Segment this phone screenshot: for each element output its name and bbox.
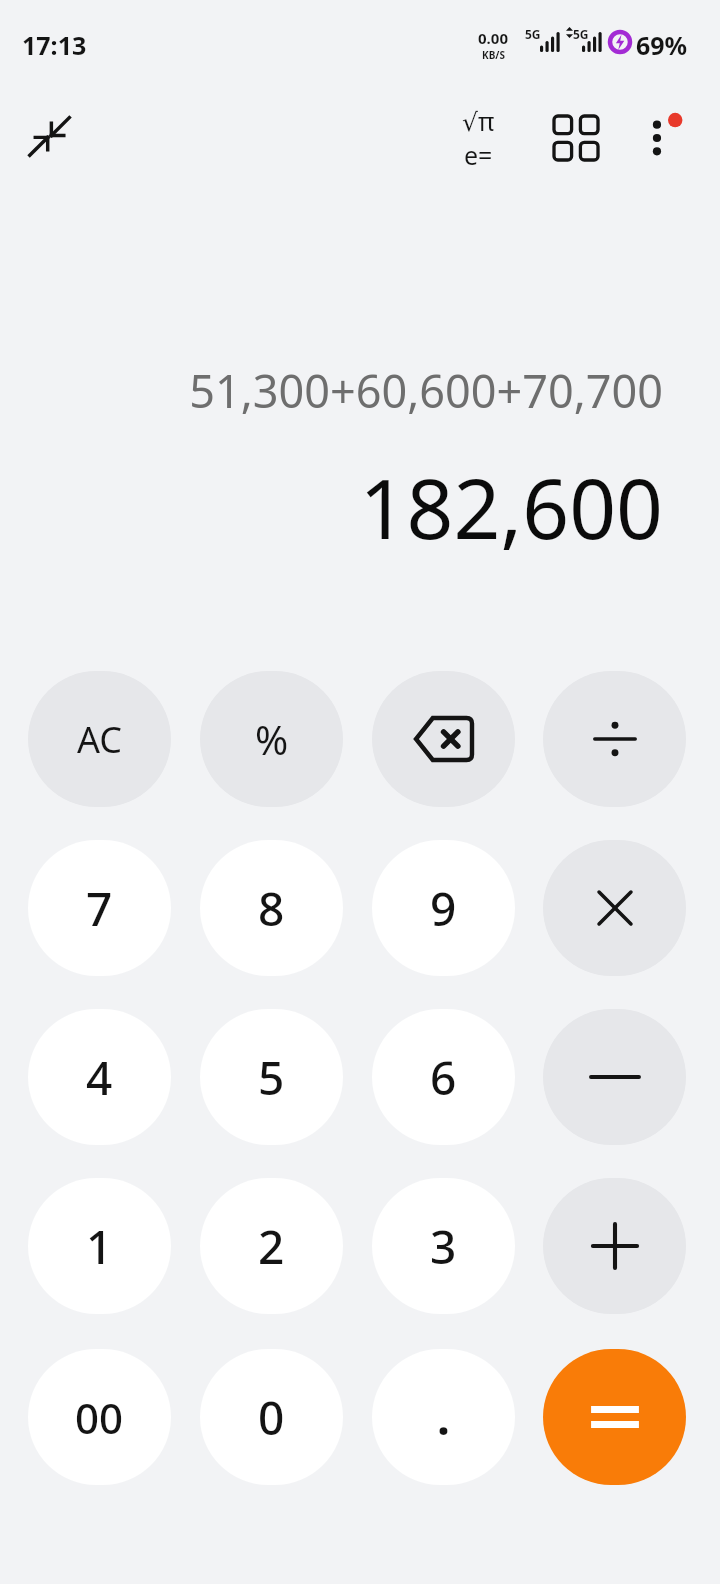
staticText: 17:13 xyxy=(22,28,87,62)
staticText: √π xyxy=(462,104,495,138)
staticText: 69% xyxy=(636,28,688,62)
button[interactable]: 4 xyxy=(28,1009,171,1145)
staticText: 6 xyxy=(430,1046,457,1109)
staticText: 51,300+60,600+70,700 xyxy=(189,360,663,421)
staticText: % xyxy=(255,712,289,766)
staticText: KB/S xyxy=(482,48,505,62)
button[interactable]: 8 xyxy=(200,840,343,976)
button[interactable]: 1 xyxy=(28,1178,171,1314)
staticText: 5 xyxy=(258,1046,285,1109)
button[interactable]: More options xyxy=(622,100,698,176)
staticText: 8 xyxy=(258,877,285,940)
button[interactable]: Minus xyxy=(543,1009,686,1145)
button[interactable]: Equals xyxy=(543,1349,686,1485)
button[interactable]: Plus xyxy=(543,1178,686,1314)
staticText: e= xyxy=(464,138,493,172)
button[interactable]: AC xyxy=(28,671,171,807)
staticText: 0 xyxy=(258,1386,285,1449)
button[interactable]: Backspace xyxy=(372,671,515,807)
staticText: 9 xyxy=(430,877,457,940)
staticText: 0.00 xyxy=(478,28,508,48)
staticText: 7 xyxy=(86,877,113,940)
button[interactable]: 3 xyxy=(372,1178,515,1314)
button[interactable]: . xyxy=(372,1349,515,1485)
staticText: 5G xyxy=(573,26,589,42)
staticText: 5G xyxy=(525,26,541,42)
staticText: . xyxy=(437,1386,450,1449)
button[interactable]: % xyxy=(200,671,343,807)
staticText: 2 xyxy=(258,1215,285,1278)
button[interactable]: 2 xyxy=(200,1178,343,1314)
button[interactable]: Multiply xyxy=(543,840,686,976)
button[interactable]: Keypad layout xyxy=(538,100,614,176)
button[interactable]: 9 xyxy=(372,840,515,976)
button[interactable]: 00 xyxy=(28,1349,171,1485)
button[interactable]: Scientific xyxy=(440,100,516,176)
button[interactable]: Divide xyxy=(543,671,686,807)
staticText: 00 xyxy=(75,1389,124,1446)
staticText: AC xyxy=(77,715,123,764)
button[interactable]: Collapse xyxy=(14,100,86,172)
button[interactable]: 5 xyxy=(200,1009,343,1145)
button[interactable]: 0 xyxy=(200,1349,343,1485)
staticText: 1 xyxy=(86,1215,113,1278)
staticText: 4 xyxy=(86,1046,113,1109)
button[interactable]: 6 xyxy=(372,1009,515,1145)
staticText: 3 xyxy=(430,1215,457,1278)
staticText: 182,600 xyxy=(359,451,663,563)
button[interactable]: 7 xyxy=(28,840,171,976)
